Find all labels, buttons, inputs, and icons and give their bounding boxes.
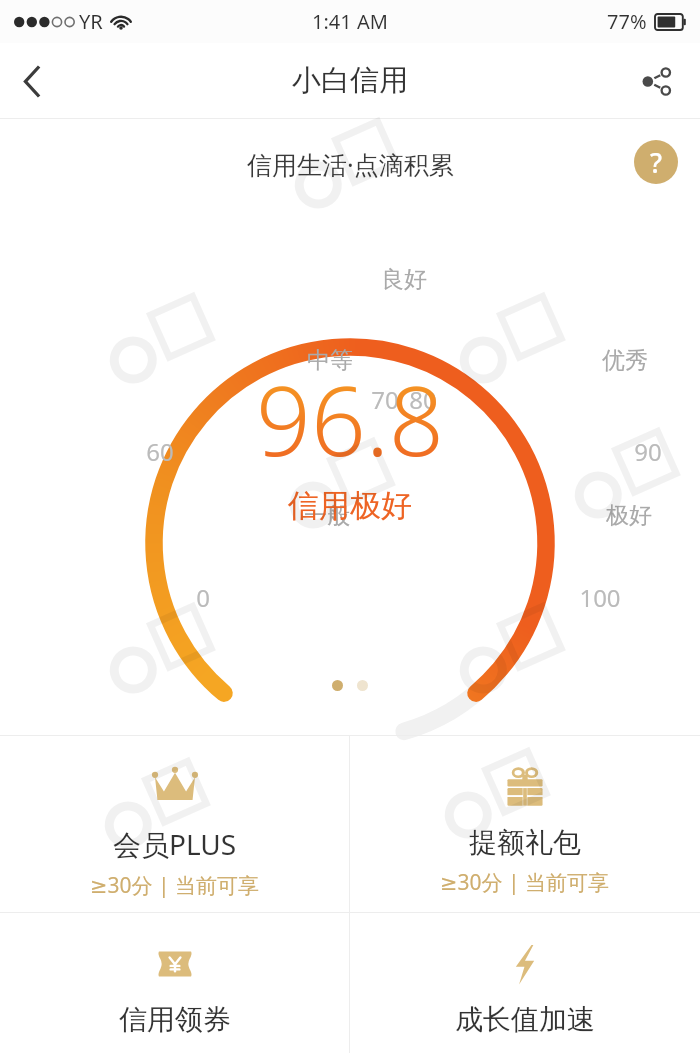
staticText: 小白信用 [292,62,408,99]
staticText: 60 [146,435,174,468]
staticText: 极好 [606,501,652,530]
staticText: 信用领券 [119,1002,231,1037]
staticText: 100 [579,581,621,614]
staticText: 1:41 AM [312,8,388,35]
staticText: 信用生活·点滴积累 [247,147,454,181]
staticText: 70 [371,383,399,416]
staticText: 一般 [304,501,350,530]
staticText: 会员PLUS [113,825,237,863]
button[interactable]: 信用领券 [0,913,349,1053]
button[interactable]: 提额礼包 [350,736,700,912]
button[interactable]: 会员PLUS [0,736,349,912]
button[interactable]: 成长值加速 [350,913,700,1053]
staticText: ≥30分 | 当前可享 [90,871,260,900]
staticText: 96.8 [256,353,444,484]
staticText: 80 [409,383,437,416]
button[interactable]: Help [634,140,678,184]
staticText: 成长值加速 [455,1002,595,1037]
staticText: 提额礼包 [469,825,581,860]
button[interactable]: Back [0,48,66,114]
staticText: ≥30分 | 当前可享 [440,868,610,897]
button[interactable]: Share [628,53,684,109]
staticText: YR [79,8,103,35]
staticText: 中等 [307,346,353,375]
staticText: 优秀 [602,346,648,375]
staticText: 90 [634,435,662,468]
staticText: ? [650,144,663,181]
staticText: 良好 [381,265,427,294]
staticText: 0 [196,581,210,614]
staticText: 信用极好 [288,486,412,525]
staticText: 77% [607,8,647,35]
